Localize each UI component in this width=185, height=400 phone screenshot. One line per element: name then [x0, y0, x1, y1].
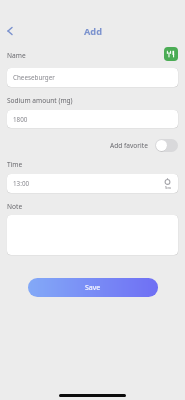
button[interactable]: Now: [161, 177, 174, 190]
staticText: Now: [165, 186, 171, 190]
button[interactable]: Save: [28, 278, 158, 297]
button[interactable]: Add favorite: [110, 139, 178, 152]
staticText: Time: [7, 160, 23, 169]
staticText: Save: [85, 283, 101, 293]
button[interactable]: 1800: [7, 110, 178, 128]
staticText: Add favorite: [110, 141, 148, 150]
button[interactable]: Cheeseburger: [7, 68, 178, 87]
staticText: Sodium amount (mg): [7, 96, 73, 105]
staticText: 13:00: [13, 179, 30, 188]
button[interactable]: Back: [3, 24, 17, 38]
button[interactable]: Choose food: [164, 47, 178, 61]
staticText: Name: [7, 51, 26, 60]
button[interactable]: 13:00: [7, 174, 178, 193]
staticText: 1800: [13, 115, 28, 124]
staticText: Cheeseburger: [13, 73, 55, 82]
staticText: Note: [7, 202, 23, 211]
staticText: Add: [84, 25, 102, 38]
